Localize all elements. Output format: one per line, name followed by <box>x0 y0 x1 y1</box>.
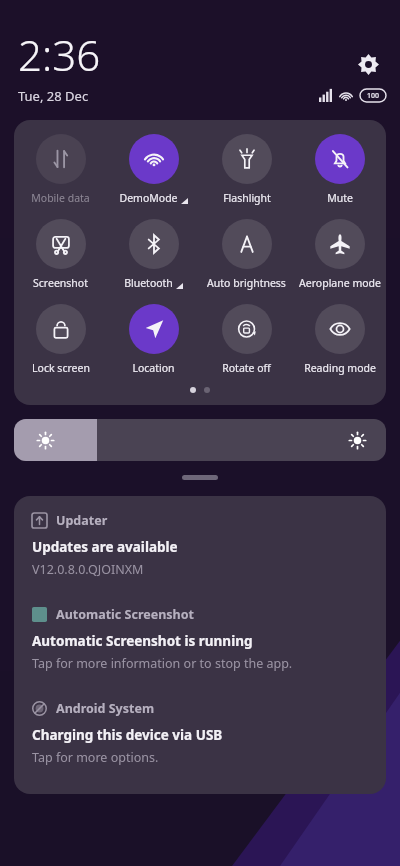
staticText: Rotate off <box>222 361 271 375</box>
staticText: Lock screen <box>32 361 90 375</box>
button[interactable]: Brightness <box>14 419 386 461</box>
button[interactable]: Bluetooth <box>107 217 200 292</box>
button[interactable]: Mute <box>293 132 386 207</box>
staticText: Tap for more options. <box>32 749 159 766</box>
button[interactable]: Flashlight <box>200 132 293 207</box>
button[interactable]: DemoMode <box>107 132 200 207</box>
button[interactable]: Auto brightness <box>200 217 293 292</box>
staticText: 100 <box>367 91 380 101</box>
button[interactable]: Lock screen <box>14 302 107 377</box>
staticText: 2:36 <box>18 26 101 83</box>
staticText: Screenshot <box>33 276 88 290</box>
staticText: Android System <box>56 700 155 717</box>
button[interactable]: Location <box>107 302 200 377</box>
staticText: Mute <box>327 191 353 205</box>
button[interactable]: Automatic Screenshot <box>14 590 386 684</box>
staticText: Updates are available <box>32 538 178 556</box>
staticText: Flashlight <box>223 191 271 205</box>
staticText: Automatic Screenshot is running <box>32 632 253 650</box>
button[interactable]: Screenshot <box>14 217 107 292</box>
staticText: Tap for more information or to stop the … <box>32 655 293 672</box>
button[interactable]: Settings <box>350 46 386 82</box>
staticText: Automatic Screenshot <box>56 606 194 623</box>
staticText: DemoMode <box>119 191 178 205</box>
staticText: Mobile data <box>31 191 90 205</box>
button[interactable]: Reading mode <box>293 302 386 377</box>
staticText: Updater <box>56 512 108 529</box>
button[interactable]: Aeroplane mode <box>293 217 386 292</box>
staticText: Bluetooth <box>124 276 173 290</box>
staticText: Auto brightness <box>207 276 286 290</box>
button[interactable]: Rotate off <box>200 302 293 377</box>
button[interactable]: Android System <box>14 684 386 778</box>
staticText: V12.0.8.0.QJOINXM <box>32 561 144 578</box>
button[interactable]: Updater <box>14 496 386 590</box>
staticText: Tue, 28 Dec <box>18 87 89 105</box>
staticText: Reading mode <box>304 361 376 375</box>
button[interactable]: Mobile data <box>14 132 107 207</box>
staticText: Charging this device via USB <box>32 726 223 744</box>
staticText: Location <box>132 361 175 375</box>
staticText: Aeroplane mode <box>299 276 381 290</box>
